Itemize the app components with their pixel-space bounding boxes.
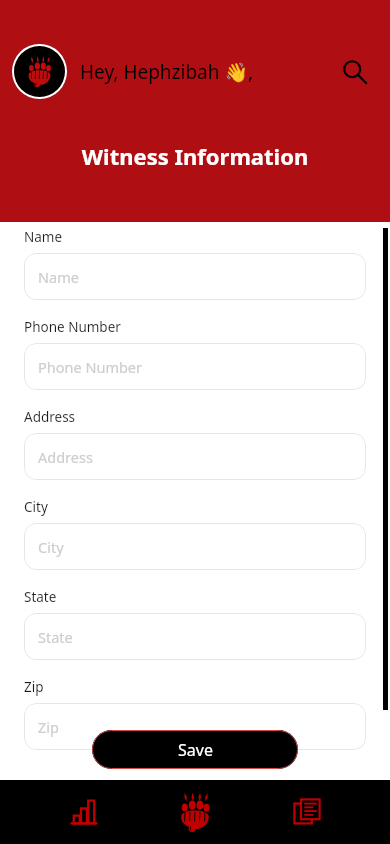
button[interactable]: Statistics [57,785,111,839]
button[interactable]: Search [338,55,372,89]
button[interactable]: Address [24,433,366,480]
staticText: Address [38,447,93,467]
staticText: Save [178,739,213,761]
staticText: State [24,588,57,606]
button[interactable]: Home [167,784,223,840]
staticText: Address [24,408,76,426]
button[interactable]: Save [92,730,298,769]
staticText: Phone Number [38,357,143,377]
staticText: Zip [38,717,59,737]
button[interactable]: State [24,613,366,660]
staticText: Zip [24,678,44,696]
staticText: Name [24,228,63,246]
staticText: Name [38,267,79,287]
button[interactable]: Profile [12,44,67,99]
button[interactable]: Reports [280,785,334,839]
staticText: City [38,537,64,557]
staticText: Phone Number [24,318,121,336]
staticText: City [24,498,48,516]
button[interactable]: City [24,523,366,570]
button[interactable]: Name [24,253,366,300]
button[interactable]: Phone Number [24,343,366,390]
staticText: Hey, Hephzibah 👋, [80,59,254,85]
button[interactable]: Zip [24,703,366,750]
staticText: Witness Information [0,141,390,171]
staticText: State [38,627,73,647]
